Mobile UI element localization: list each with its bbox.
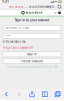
button[interactable]: Forgot your password? bbox=[3, 46, 33, 49]
staticText: Not Secure bbox=[9, 5, 24, 8]
staticText: Protected by SecureBank 256-bit SSL bbox=[7, 65, 57, 69]
staticText: Forgot your password? bbox=[3, 46, 33, 49]
button[interactable]: Forward bbox=[13, 88, 26, 100]
button[interactable]: Reload bbox=[57, 4, 63, 10]
staticText: EN bbox=[54, 11, 57, 14]
staticText: Sign in to your account bbox=[15, 18, 49, 22]
button[interactable]: Back bbox=[0, 88, 13, 100]
button[interactable]: Remember me bbox=[3, 40, 61, 43]
button[interactable]: Create account bbox=[3, 58, 61, 64]
staticText: Username or email bbox=[4, 26, 29, 30]
button[interactable]: Sign in bbox=[3, 51, 61, 57]
staticText: •••••• bbox=[4, 34, 10, 38]
button[interactable]: Menu bbox=[58, 11, 61, 14]
button[interactable]: Tabs bbox=[51, 88, 64, 100]
button[interactable]: Share bbox=[26, 88, 38, 100]
staticText: Sign in bbox=[27, 52, 37, 56]
staticText: SecureBank bbox=[26, 11, 43, 14]
staticText: — bbox=[25, 5, 28, 8]
staticText: Remember me bbox=[6, 40, 26, 43]
staticText: securebank.example bbox=[29, 5, 55, 8]
button[interactable]: EN bbox=[54, 11, 57, 14]
staticText: 9:41 bbox=[2, 0, 9, 3]
button[interactable]: Bookmarks bbox=[38, 88, 51, 100]
staticText: Create account bbox=[21, 59, 43, 63]
